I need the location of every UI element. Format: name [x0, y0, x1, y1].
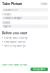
staticText: Before you start	[2, 31, 27, 35]
staticText: Take Picture	[2, 2, 22, 6]
staticText: Done	[41, 2, 46, 5]
staticText: Language	[2, 21, 10, 24]
button[interactable]: Register	[30, 68, 48, 71]
staticText: Register	[33, 68, 45, 71]
staticText: Upload a file	[3, 8, 17, 11]
staticText: Review photo framing	[4, 36, 27, 39]
staticText: Category	[2, 13, 11, 16]
button[interactable]: Done	[40, 2, 48, 5]
staticText: Avoid strong backlight	[4, 44, 26, 47]
staticText: English	[3, 25, 10, 28]
staticText: Choose a category	[3, 17, 21, 19]
staticText: Learn more about privacy	[2, 63, 27, 66]
staticText: Keep subject centred	[4, 40, 25, 43]
